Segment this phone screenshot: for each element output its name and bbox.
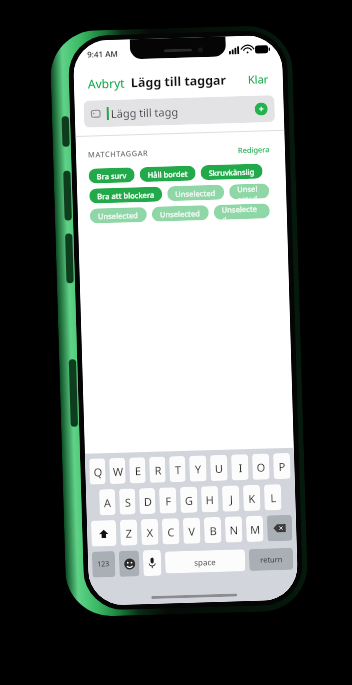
button[interactable]: Emoji — [119, 550, 140, 577]
staticText: F — [165, 493, 171, 508]
button[interactable]: D — [139, 488, 156, 514]
button[interactable]: L — [264, 484, 282, 510]
staticText: V — [188, 524, 195, 539]
button[interactable]: N — [225, 516, 243, 543]
button[interactable]: Numbers — [92, 551, 116, 578]
staticText: Håll bordet — [147, 169, 188, 180]
staticText: Redigera — [238, 144, 270, 155]
staticText: Unselected — [98, 210, 139, 221]
staticText: B — [209, 523, 217, 538]
staticText: Q — [93, 464, 103, 480]
staticText: L — [270, 490, 276, 505]
button[interactable]: Backspace — [267, 515, 293, 541]
staticText: Klar — [248, 71, 269, 87]
button[interactable]: O — [252, 453, 270, 480]
button[interactable]: Skruvkänslig — [200, 163, 263, 180]
button[interactable]: Dictation — [143, 550, 162, 576]
staticText: 9:41 AM — [87, 48, 118, 60]
staticText: Lägg till taggar — [131, 71, 227, 91]
button[interactable]: X — [141, 519, 159, 545]
button[interactable]: Q — [89, 458, 106, 485]
button[interactable]: M — [246, 516, 264, 542]
staticText: Skruvkänslig — [208, 167, 255, 178]
staticText: 123 — [97, 559, 110, 570]
button[interactable]: R — [149, 456, 166, 483]
button[interactable]: K — [243, 485, 261, 511]
staticText: J — [229, 491, 233, 507]
staticText: Unselected — [175, 188, 216, 199]
button[interactable]: A — [99, 489, 116, 515]
button[interactable]: Unselected — [90, 207, 147, 224]
staticText: O — [256, 459, 266, 475]
button[interactable]: U — [210, 455, 228, 481]
staticText: K — [248, 491, 255, 506]
staticText: C — [167, 524, 174, 539]
staticText: Lägg till tagg — [111, 104, 179, 121]
staticText: Y — [194, 461, 202, 477]
button[interactable]: Z — [120, 519, 138, 546]
button[interactable]: Unselected — [214, 203, 270, 220]
staticText: Bra surv — [96, 170, 127, 181]
button[interactable]: Bra att blockera — [89, 186, 162, 204]
button[interactable]: P — [273, 453, 291, 479]
button[interactable]: E — [129, 457, 146, 484]
staticText: R — [154, 463, 162, 478]
button[interactable]: T — [169, 456, 186, 482]
button[interactable]: Y — [189, 455, 207, 482]
button[interactable]: Håll bordet — [139, 165, 196, 182]
button[interactable]: Bra surv — [88, 167, 135, 184]
button[interactable]: J — [222, 485, 240, 512]
button[interactable]: Add tag — [255, 102, 268, 116]
button[interactable]: return — [249, 548, 293, 571]
button[interactable]: W — [109, 458, 126, 484]
staticText: M — [250, 522, 260, 537]
staticText: H — [205, 492, 214, 507]
staticText: D — [143, 494, 152, 509]
staticText: N — [229, 522, 238, 538]
staticText: S — [124, 494, 131, 510]
staticText: U — [214, 461, 224, 476]
button[interactable]: Redigera — [235, 142, 273, 157]
button[interactable]: Shift — [91, 520, 117, 547]
staticText: E — [134, 463, 142, 478]
staticText: X — [146, 525, 153, 540]
button[interactable]: C — [162, 518, 180, 545]
staticText: Unselected — [160, 208, 201, 219]
staticText: return — [260, 554, 283, 565]
staticText: Avbryt — [88, 74, 125, 92]
button[interactable]: B — [204, 517, 222, 543]
button[interactable]: space — [165, 549, 245, 573]
button[interactable]: Unselected — [167, 185, 224, 201]
staticText: T — [174, 462, 182, 477]
staticText: A — [103, 495, 111, 510]
staticText: Bra att blockera — [97, 190, 154, 201]
staticText: Unselected — [237, 183, 261, 199]
button[interactable]: H — [201, 486, 219, 512]
button[interactable]: G — [180, 486, 198, 513]
button[interactable]: Unselected — [152, 205, 209, 222]
staticText: MATCHTAGGAR — [88, 148, 149, 160]
staticText: I — [238, 460, 243, 475]
staticText: G — [184, 493, 193, 508]
button[interactable]: S — [119, 488, 136, 515]
staticText: Unselected — [222, 203, 262, 220]
button[interactable]: V — [183, 517, 201, 544]
button[interactable]: Lägg till tagg — [83, 95, 275, 128]
staticText: P — [278, 459, 285, 474]
staticText: Z — [125, 525, 132, 541]
button[interactable]: Klar — [244, 68, 273, 90]
button[interactable]: Unselected — [229, 183, 269, 199]
staticText: space — [194, 556, 216, 568]
button[interactable]: F — [159, 487, 177, 514]
button[interactable]: Avbryt — [84, 71, 129, 95]
staticText: W — [112, 464, 124, 479]
button[interactable]: I — [231, 454, 249, 480]
